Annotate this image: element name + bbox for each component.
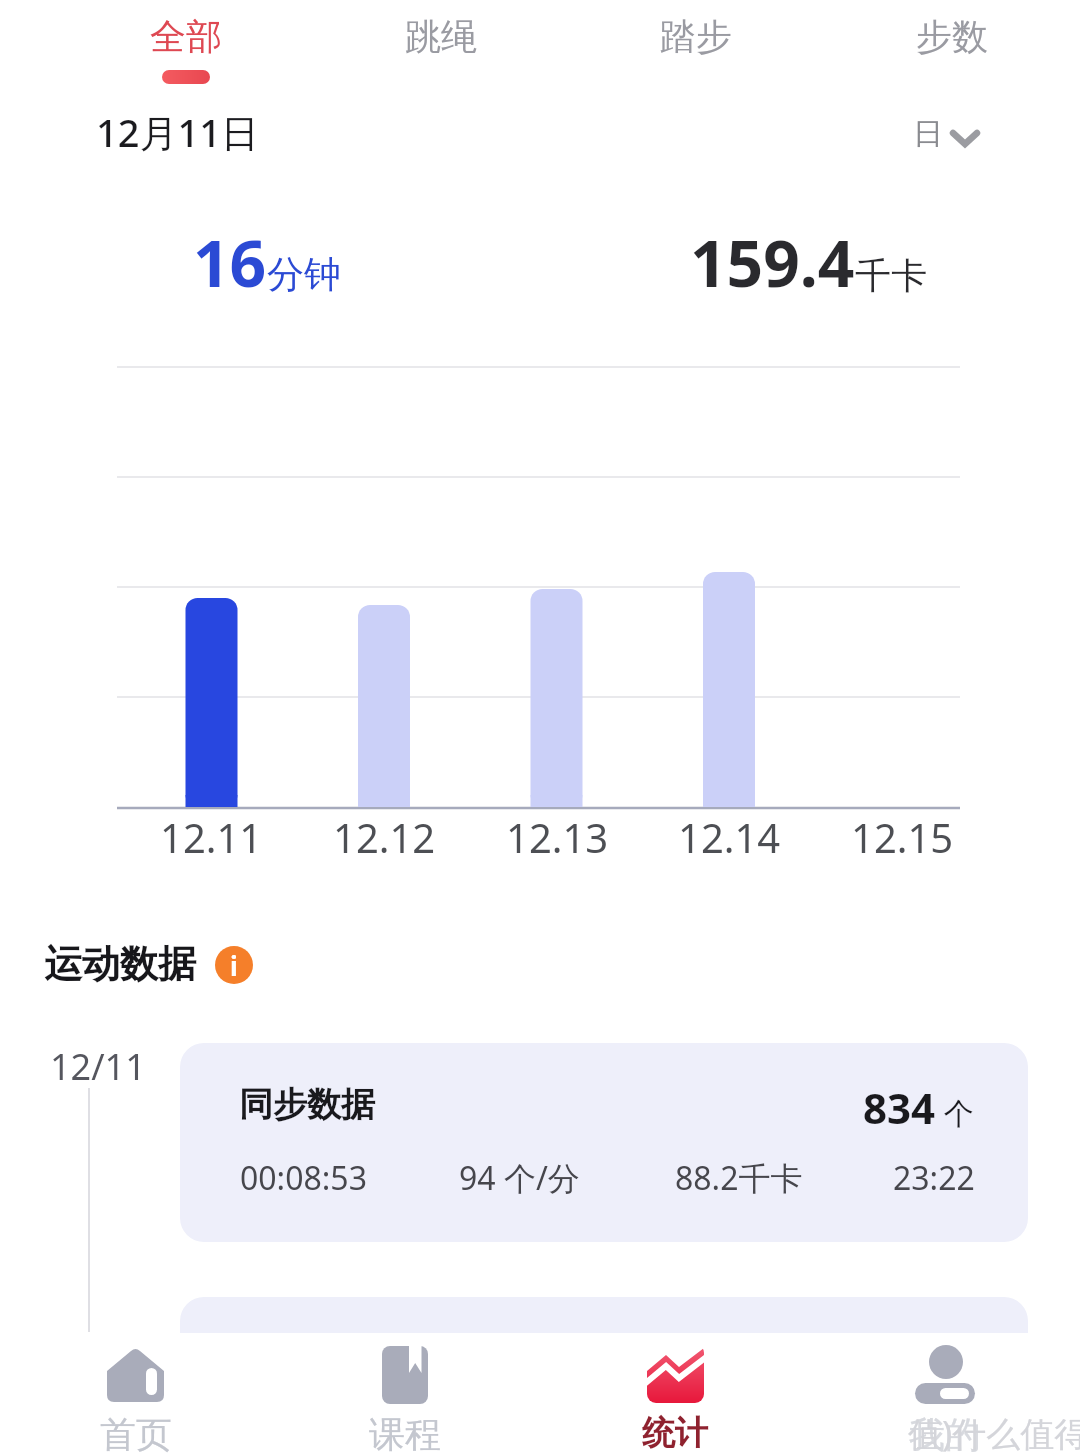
staticText: 12.14 [678, 810, 781, 864]
staticText: 12/11 [50, 1042, 146, 1091]
button[interactable]: 课程 [345, 1336, 465, 1455]
staticText: 12月11日 [96, 106, 259, 158]
staticText: 千卡 [855, 253, 927, 298]
staticText: 94 个/分 [459, 1156, 580, 1200]
button[interactable]: 步数 [824, 0, 1080, 92]
staticText: 12.12 [333, 810, 436, 864]
button[interactable]: 统计 [615, 1336, 735, 1455]
staticText: 步数 [916, 14, 988, 59]
staticText: 00:08:53 [240, 1156, 367, 1200]
staticText: 我的 [909, 1412, 981, 1455]
button[interactable]: 我的 [885, 1336, 1005, 1455]
staticText: 同步数据 [239, 1083, 375, 1126]
staticText: 全部 [150, 14, 222, 59]
button[interactable] [180, 1297, 1028, 1335]
button[interactable]: 跳绳 [313, 0, 568, 92]
button[interactable]: 踏步 [568, 0, 824, 92]
staticText: 首页 [100, 1412, 172, 1455]
staticText: 分钟 [267, 251, 341, 298]
staticText: 踏步 [660, 14, 732, 59]
staticText: 12.13 [506, 810, 609, 864]
staticText: 个 [936, 1092, 974, 1133]
staticText: 值)什么值得买 [908, 1410, 1080, 1455]
staticText: 12.15 [851, 810, 954, 864]
button[interactable]: 日 [890, 100, 1000, 160]
staticText: i [230, 948, 238, 983]
staticText: 统计 [642, 1412, 708, 1454]
button[interactable]: 全部 [58, 0, 313, 92]
button[interactable]: i [215, 946, 253, 984]
staticText: 23:22 [893, 1156, 975, 1200]
staticText: 12.11 [160, 810, 263, 864]
staticText: 日 [913, 115, 943, 153]
staticText: 跳绳 [405, 14, 477, 59]
staticText: 16 [193, 219, 267, 306]
staticText: 课程 [369, 1412, 441, 1455]
staticText: 834 [863, 1079, 936, 1136]
button[interactable]: 首页 [76, 1336, 196, 1455]
staticText: 运动数据 [44, 940, 196, 988]
staticText: 88.2千卡 [675, 1156, 803, 1200]
button[interactable]: 同步数据 [180, 1043, 1028, 1242]
staticText: 159.4 [690, 219, 855, 306]
